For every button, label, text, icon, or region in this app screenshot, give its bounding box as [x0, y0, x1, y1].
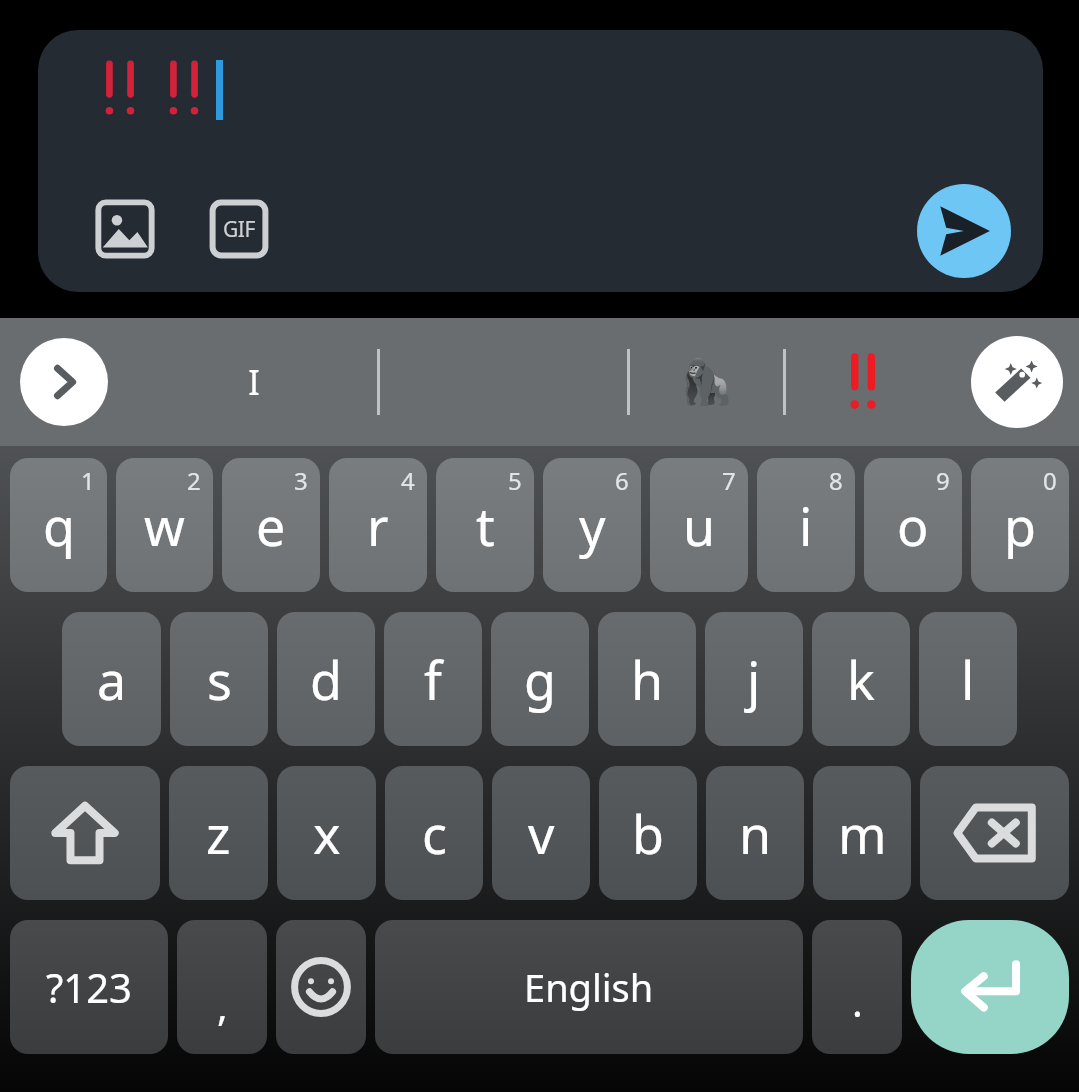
button[interactable]: English — [375, 920, 803, 1054]
staticText: 6 — [615, 464, 629, 497]
staticText: English — [524, 961, 654, 1013]
staticText: x — [313, 798, 341, 869]
button[interactable]: m — [813, 766, 911, 900]
staticText: l — [961, 644, 975, 715]
button[interactable]: t — [436, 458, 534, 592]
staticText: 1 — [81, 464, 95, 497]
button[interactable]: Send — [917, 184, 1011, 278]
staticText: m — [838, 798, 887, 869]
button[interactable]: Enter — [911, 920, 1069, 1054]
button[interactable]: u — [650, 458, 748, 592]
button[interactable]: Insert GIF — [202, 192, 276, 266]
staticText: 8 — [829, 464, 843, 497]
staticText: o — [897, 490, 929, 561]
button[interactable]: k — [812, 612, 910, 746]
button[interactable]: c — [385, 766, 483, 900]
staticText: k — [847, 644, 875, 715]
button[interactable]: ?123 — [10, 920, 168, 1054]
button[interactable]: Backspace — [920, 766, 1069, 900]
staticText: y — [579, 490, 606, 561]
button[interactable]: n — [706, 766, 804, 900]
button[interactable]: j — [705, 612, 803, 746]
button[interactable]: x — [277, 766, 376, 900]
button[interactable]: r — [329, 458, 427, 592]
button[interactable]: I — [130, 318, 377, 446]
staticText: 0 — [1043, 464, 1057, 497]
staticText: f — [424, 644, 442, 715]
staticText: 2 — [187, 464, 201, 497]
button[interactable] — [786, 318, 939, 446]
button[interactable]: q — [10, 458, 107, 592]
staticText: GIF — [223, 215, 255, 244]
button[interactable]: Emoji — [276, 920, 366, 1054]
staticText: . — [852, 974, 863, 1028]
staticText: r — [367, 490, 389, 561]
button[interactable]: Writing tools — [971, 336, 1063, 428]
button[interactable]: w — [116, 458, 213, 592]
button[interactable]: p — [971, 458, 1069, 592]
staticText: b — [632, 798, 664, 869]
button[interactable]: z — [169, 766, 268, 900]
button[interactable]: a — [62, 612, 161, 746]
button[interactable]: b — [599, 766, 697, 900]
button[interactable]: v — [492, 766, 590, 900]
staticText: j — [747, 644, 761, 715]
button[interactable]: i — [757, 458, 855, 592]
staticText: 3 — [294, 464, 308, 497]
staticText: g — [524, 644, 556, 715]
staticText: 🦍 — [679, 356, 734, 408]
staticText: c — [422, 798, 447, 869]
staticText: 5 — [508, 464, 522, 497]
staticText: z — [206, 798, 231, 869]
staticText: v — [528, 798, 555, 869]
button[interactable]: 🦍 — [630, 318, 783, 446]
staticText: I — [248, 359, 260, 405]
button[interactable]: . — [812, 920, 902, 1054]
staticText: q — [43, 490, 75, 561]
button[interactable]: l — [919, 612, 1017, 746]
staticText: h — [631, 644, 664, 715]
button[interactable]: f — [384, 612, 482, 746]
staticText: ?123 — [46, 960, 132, 1014]
staticText: u — [683, 490, 716, 561]
button[interactable]: y — [543, 458, 641, 592]
button[interactable]: g — [491, 612, 589, 746]
button[interactable]: Insert image — [88, 192, 162, 266]
staticText: 4 — [401, 464, 415, 497]
staticText: , — [217, 978, 228, 1032]
button[interactable]: Shift — [10, 766, 160, 900]
staticText: p — [1004, 490, 1036, 561]
staticText: 7 — [722, 464, 736, 497]
staticText: t — [476, 490, 495, 561]
staticText: n — [739, 798, 772, 869]
button[interactable]: s — [170, 612, 268, 746]
staticText: 9 — [936, 464, 950, 497]
staticText: w — [144, 490, 185, 561]
staticText: i — [799, 490, 813, 561]
staticText: d — [310, 644, 342, 715]
button[interactable]: h — [598, 612, 696, 746]
staticText: e — [256, 490, 286, 561]
button[interactable]: Expand toolbar — [20, 338, 108, 426]
button[interactable]: e — [222, 458, 320, 592]
staticText: a — [97, 644, 127, 715]
button[interactable]: , — [177, 920, 267, 1054]
button[interactable]: d — [277, 612, 375, 746]
staticText: s — [207, 644, 232, 715]
button[interactable]: o — [864, 458, 962, 592]
